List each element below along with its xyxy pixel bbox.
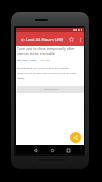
staticText: Turin zoo to close temporarily after vis… bbox=[17, 46, 75, 56]
staticText: BBC News bbox=[17, 59, 29, 62]
staticText: Visit website bbox=[44, 88, 58, 91]
button[interactable]: More options bbox=[78, 37, 83, 42]
button[interactable]: Home bbox=[48, 146, 56, 154]
button[interactable]: Share bbox=[70, 132, 81, 143]
button[interactable]: Back bbox=[31, 146, 39, 154]
button[interactable]: Back bbox=[18, 35, 27, 44]
button[interactable]: Visit website bbox=[17, 86, 84, 93]
button[interactable]: Recents bbox=[64, 146, 72, 154]
staticText: Last 24 Hours (#9) bbox=[26, 36, 63, 42]
button[interactable]: Favorite bbox=[67, 35, 76, 44]
staticText: Africa bbox=[30, 59, 37, 62]
staticText: Maintenance and more security are planne… bbox=[17, 66, 77, 80]
staticText: 1 hour ago bbox=[38, 59, 50, 62]
